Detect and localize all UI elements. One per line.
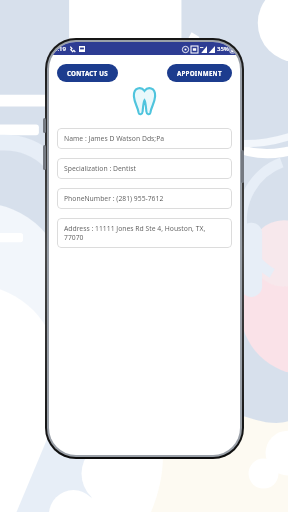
button[interactable]: CONTACT US <box>57 64 118 82</box>
button[interactable]: Address : 11111 Jones Rd Ste 4, Houston,… <box>57 218 232 248</box>
staticText: 35% <box>217 45 229 53</box>
button[interactable]: APPOINMENT <box>167 64 232 82</box>
staticText: 4:19 <box>54 45 66 53</box>
button[interactable]: PhoneNumber : (281) 955-7612 <box>57 188 232 209</box>
staticText: CONTACT US <box>67 69 108 77</box>
button[interactable]: Specialization : Dentist <box>57 158 232 179</box>
other: Dental logo <box>132 86 157 115</box>
staticText: PhoneNumber : (281) 955-7612 <box>64 194 164 203</box>
staticText: Address : 11111 Jones Rd Ste 4, Houston,… <box>64 224 206 242</box>
staticText: Specialization : Dentist <box>64 164 136 173</box>
staticText: APPOINMENT <box>177 69 222 77</box>
button[interactable]: Name : James D Watson Dds;Pa <box>57 128 232 149</box>
staticText: Name : James D Watson Dds;Pa <box>64 134 165 143</box>
